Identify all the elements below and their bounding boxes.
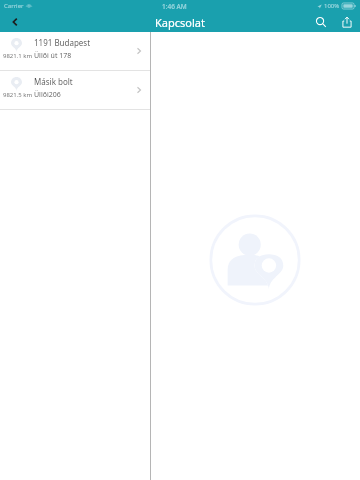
staticText: Üllői út 178 — [34, 51, 72, 61]
button[interactable]: Share — [334, 12, 360, 32]
staticText: 9821.5 km — [3, 91, 33, 99]
button[interactable]: Back — [0, 12, 30, 32]
staticText: Carrier — [4, 2, 24, 10]
staticText: 9821.1 km — [3, 52, 33, 60]
staticText: 1:46 AM — [162, 2, 187, 11]
button[interactable]: 1191 Budapest — [0, 32, 150, 70]
button[interactable]: Search — [308, 12, 334, 32]
button[interactable]: Másik bolt — [0, 71, 150, 109]
staticText: Másik bolt — [34, 76, 73, 87]
staticText: 1191 Budapest — [34, 37, 91, 48]
staticText: Kapcsolat — [155, 15, 205, 30]
staticText: 100% — [324, 2, 340, 10]
staticText: Üllői206 — [34, 90, 61, 100]
